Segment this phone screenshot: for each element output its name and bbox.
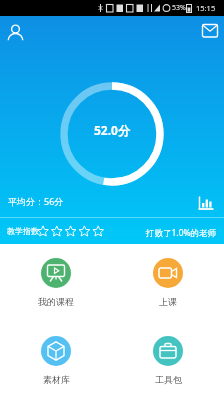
- button[interactable]: 素材库: [0, 322, 112, 400]
- staticText: 素材库: [43, 374, 70, 385]
- staticText: 53%: [172, 3, 186, 13]
- button[interactable]: 我的课程: [0, 244, 112, 322]
- button[interactable]: [198, 196, 214, 212]
- staticText: 工具包: [155, 374, 182, 385]
- button[interactable]: 工具包: [112, 322, 224, 400]
- staticText: 我的课程: [38, 296, 74, 307]
- staticText: 15:15: [196, 3, 216, 13]
- button[interactable]: [6, 21, 26, 41]
- button[interactable]: [201, 22, 219, 40]
- staticText: 平均分：56分: [8, 195, 64, 207]
- staticText: 52.0分: [94, 122, 130, 138]
- staticText: 上课: [159, 296, 177, 307]
- button[interactable]: 上课: [112, 244, 224, 322]
- staticText: 打败了1.0%的老师: [146, 227, 217, 239]
- staticText: 教学指数: [7, 226, 39, 236]
